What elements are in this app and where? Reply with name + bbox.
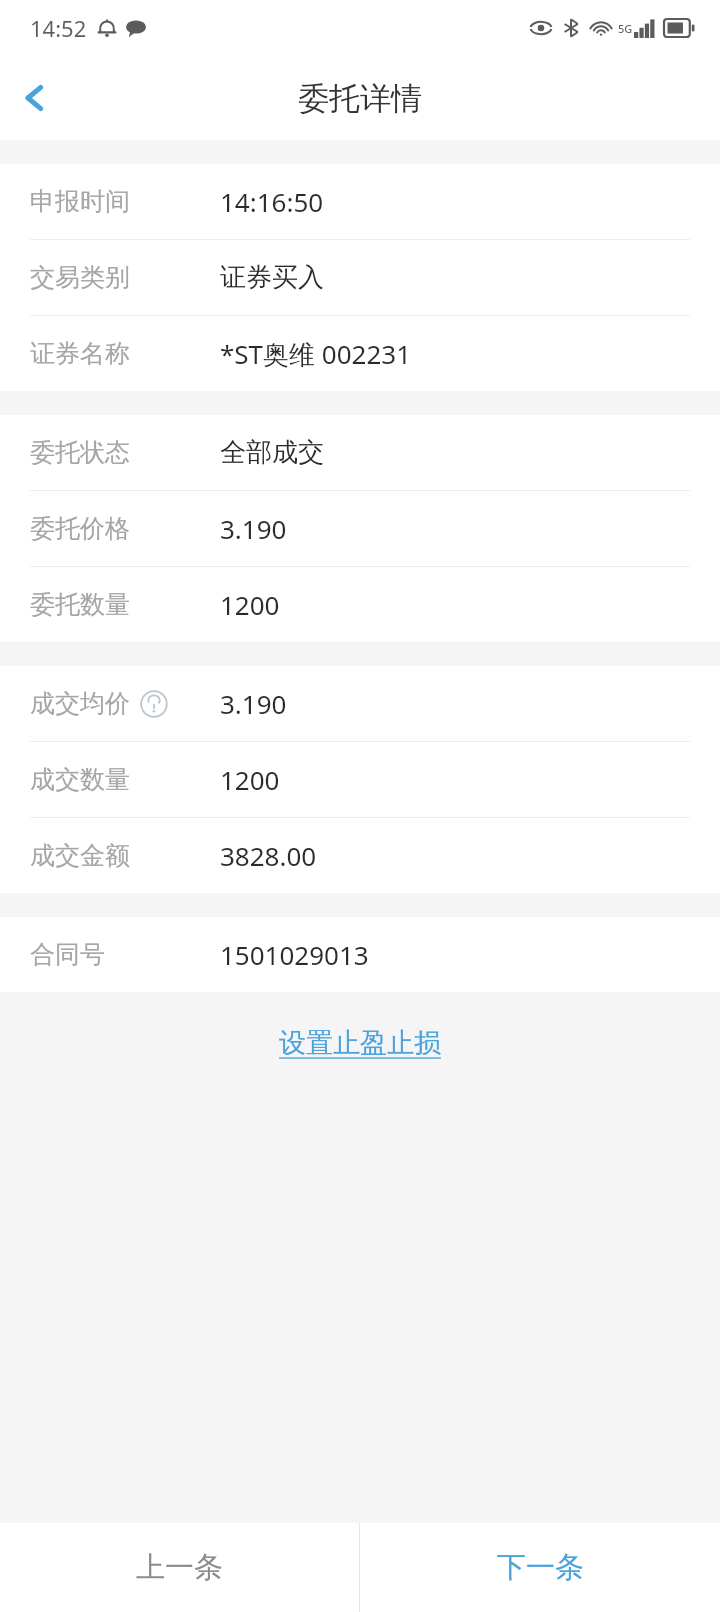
button[interactable]: 下一条 <box>360 1523 720 1612</box>
button[interactable]: 成交金额 <box>0 818 720 893</box>
staticText: 委托详情 <box>298 79 422 118</box>
button[interactable]: 成交均价 <box>0 666 720 741</box>
staticText: 14:52 <box>30 13 87 43</box>
staticText: 1200 <box>220 762 280 797</box>
staticText: 证券名称 <box>30 338 130 369</box>
staticText: 委托状态 <box>30 437 130 468</box>
staticText: 3.190 <box>220 686 287 721</box>
staticText: 成交数量 <box>30 764 130 795</box>
staticText: 申报时间 <box>30 186 130 217</box>
staticText: 3.190 <box>220 511 287 546</box>
staticText: 证券买入 <box>220 261 324 294</box>
button[interactable]: 证券名称 <box>0 316 720 391</box>
staticText: 1501029013 <box>220 937 369 972</box>
staticText: 5G <box>618 21 633 36</box>
button[interactable]: 合同号 <box>0 917 720 992</box>
button[interactable]: 申报时间 <box>0 164 720 239</box>
staticText: 14:16:50 <box>220 184 324 219</box>
staticText: 上一条 <box>136 1549 223 1586</box>
staticText: 3828.00 <box>220 838 317 873</box>
staticText: 设置止盈止损 <box>279 1026 441 1060</box>
staticText: 下一条 <box>497 1549 584 1586</box>
button[interactable]: 返回 <box>0 63 70 133</box>
staticText: 委托价格 <box>30 513 130 544</box>
staticText: 委托数量 <box>30 589 130 620</box>
button[interactable]: 委托状态 <box>0 415 720 490</box>
button[interactable]: 成交数量 <box>0 742 720 817</box>
staticText: 合同号 <box>30 939 105 970</box>
button[interactable]: 上一条 <box>0 1523 359 1612</box>
button[interactable]: 委托价格 <box>0 491 720 566</box>
staticText: 全部成交 <box>220 436 324 469</box>
button[interactable]: 设置止盈止损 <box>263 1020 457 1066</box>
button[interactable]: 委托数量 <box>0 567 720 642</box>
staticText: 1200 <box>220 587 280 622</box>
staticText: 成交金额 <box>30 840 130 871</box>
staticText: 成交均价 <box>30 688 130 719</box>
staticText: 交易类别 <box>30 262 130 293</box>
button[interactable]: 交易类别 <box>0 240 720 315</box>
staticText: *ST奥维 002231 <box>220 336 412 372</box>
